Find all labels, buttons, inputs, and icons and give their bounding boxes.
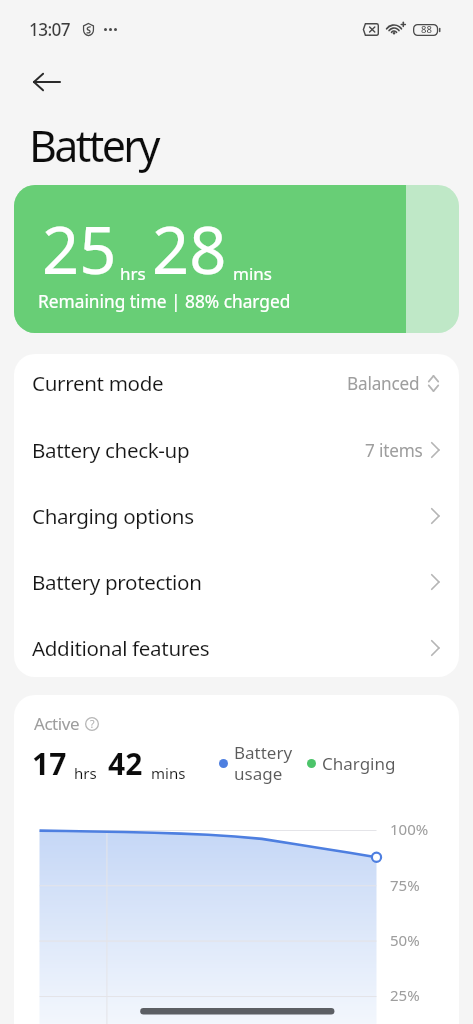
button[interactable]: Charging options — [14, 483, 459, 549]
staticText: 17 — [32, 743, 67, 784]
staticText: 28 — [152, 205, 227, 294]
button[interactable]: Battery protection — [14, 549, 459, 615]
button[interactable]: 25 — [14, 185, 459, 333]
staticText: Charging — [322, 752, 396, 775]
staticText: Additional features — [32, 634, 210, 662]
staticText: 7 items — [365, 439, 423, 462]
staticText: mins — [233, 262, 272, 285]
button[interactable]: Current mode — [14, 354, 459, 416]
staticText: Battery usage — [234, 741, 293, 785]
staticText: 88 — [421, 23, 432, 36]
staticText: Current mode — [32, 369, 164, 397]
staticText: Remaining time | 88% charged — [38, 290, 291, 314]
button[interactable]: Back — [24, 59, 70, 105]
staticText: 25% — [390, 985, 420, 1005]
staticText: 42 — [108, 743, 143, 784]
staticText: 25 — [42, 205, 117, 294]
staticText: hrs — [74, 763, 97, 783]
staticText: Battery protection — [32, 568, 202, 596]
staticText: Balanced — [347, 372, 420, 395]
staticText: 100% — [390, 819, 429, 839]
staticText: 75% — [390, 875, 420, 895]
staticText: Charging options — [32, 502, 194, 530]
staticText: hrs — [120, 262, 146, 285]
staticText: Active — [34, 712, 80, 735]
staticText: Battery check-up — [32, 436, 190, 464]
staticText: Battery — [29, 116, 158, 175]
button[interactable]: Additional features — [14, 615, 459, 677]
staticText: mins — [151, 763, 186, 783]
staticText: ? — [90, 717, 95, 731]
staticText: 13:07 — [29, 18, 71, 41]
button[interactable]: Battery check-up — [14, 417, 459, 483]
staticText: 50% — [390, 930, 420, 950]
